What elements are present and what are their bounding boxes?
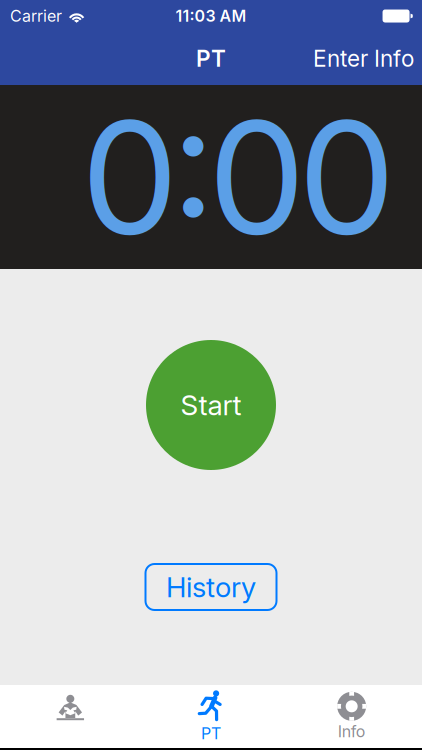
button[interactable]: History: [145, 564, 276, 610]
button[interactable]: Study: [0, 685, 141, 748]
staticText: Enter Info: [313, 45, 414, 72]
staticText: Start: [180, 388, 241, 422]
staticText: Carrier: [10, 6, 62, 26]
staticText: Info: [338, 722, 366, 741]
button[interactable]: Start: [146, 340, 276, 470]
staticText: History: [166, 570, 256, 604]
button[interactable]: Info: [281, 685, 422, 748]
staticText: PT: [201, 724, 221, 743]
staticText: 11:03 AM: [175, 6, 246, 26]
button[interactable]: Enter Info: [305, 35, 422, 82]
staticText: PT: [196, 45, 226, 72]
button[interactable]: PT: [141, 685, 281, 748]
staticText: 0:00: [81, 83, 396, 270]
